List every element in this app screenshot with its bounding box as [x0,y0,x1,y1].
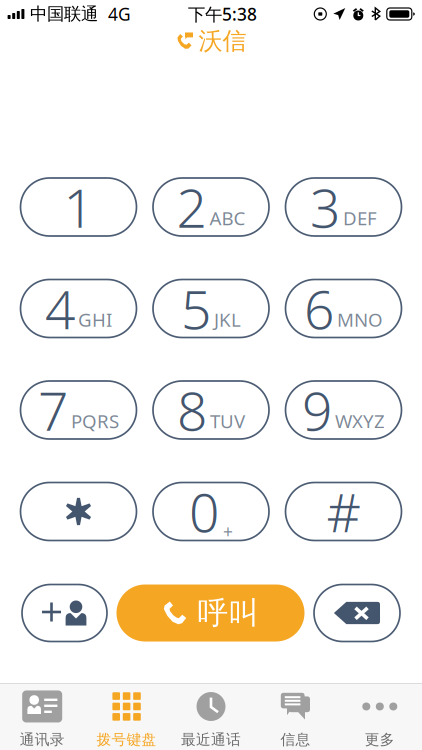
button[interactable]: # [285,482,401,540]
button[interactable]: 4 [20,279,136,337]
staticText: 8 [177,375,207,445]
button[interactable]: 0 [153,482,269,540]
staticText: DEF [343,206,377,230]
staticText: 4 [45,273,75,344]
staticText: + [223,520,233,543]
staticText: 0 [189,476,219,547]
staticText: 最近通话 [181,730,241,748]
staticText: 中国联通 [30,3,98,25]
button[interactable]: 信息 [253,684,338,750]
button[interactable]: 7 [20,381,136,439]
staticText: 3 [310,172,340,242]
button[interactable]: 最近通话 [169,684,253,750]
staticText: JKL [214,307,241,332]
staticText: 更多 [365,730,395,748]
button[interactable]: 6 [285,279,401,337]
button[interactable]: 更多 [338,684,422,750]
staticText: PQRS [71,409,119,433]
staticText: 6 [304,273,334,344]
staticText: 1 [63,172,93,242]
button[interactable]: 3 [285,178,401,236]
button[interactable]: 9 [285,381,401,439]
staticText: # [326,476,360,547]
staticText: WXYZ [335,409,385,433]
staticText: ABC [209,206,245,230]
staticText: 拨号键盘 [97,730,157,748]
staticText: 9 [302,375,332,445]
button[interactable]: 呼叫 [116,584,304,641]
staticText: TUV [210,409,245,433]
button[interactable]: Delete [314,584,400,641]
staticText: 4G [108,2,131,25]
staticText: 沃信 [198,26,246,56]
staticText: MNO [337,307,383,332]
staticText: 7 [38,375,68,445]
staticText: 通讯录 [20,730,65,748]
button[interactable]: 5 [153,279,269,337]
button[interactable]: 通讯录 [0,684,84,750]
staticText: 下午5:38 [188,2,257,25]
button[interactable] [20,482,136,540]
button[interactable]: 8 [153,381,269,439]
button[interactable]: 1 [20,178,136,236]
staticText: 呼叫 [197,594,259,632]
staticText: 2 [176,172,206,242]
button[interactable]: 2 [153,178,269,236]
button[interactable]: 拨号键盘 [84,684,169,750]
staticText: 5 [181,273,211,344]
staticText: GHI [78,307,112,332]
button[interactable]: Add contact [22,584,107,641]
staticText: 信息 [280,730,310,748]
